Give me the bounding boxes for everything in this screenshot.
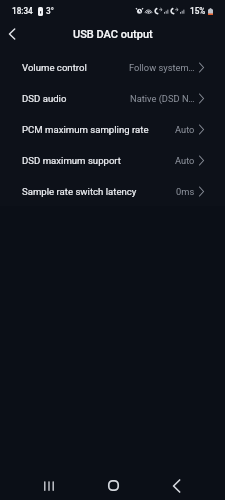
staticText: Sample rate switch latency <box>22 186 137 197</box>
staticText: Volume control <box>22 62 87 73</box>
staticText: 15% <box>190 6 206 16</box>
staticText: Auto <box>175 155 195 166</box>
staticText: Follow system… <box>129 62 195 73</box>
button[interactable]: DSD audio <box>0 83 225 114</box>
button[interactable]: Sample rate switch latency <box>0 176 225 207</box>
button[interactable]: Back <box>158 471 194 500</box>
staticText: Auto <box>175 124 195 135</box>
button[interactable]: Recent apps <box>31 471 67 500</box>
button[interactable]: Back <box>3 25 21 43</box>
staticText: 0ms <box>176 186 195 197</box>
staticText: DSD maximum support <box>22 155 121 166</box>
staticText: USB DAC output <box>73 28 153 41</box>
button[interactable]: PCM maximum sampling rate <box>0 114 225 145</box>
staticText: PCM maximum sampling rate <box>22 124 149 135</box>
staticText: Native (DSD N… <box>130 93 195 104</box>
staticText: DSD audio <box>22 93 67 104</box>
button[interactable]: DSD maximum support <box>0 145 225 176</box>
button[interactable]: Volume control <box>0 52 225 83</box>
staticText: 18:34 <box>12 6 33 16</box>
button[interactable]: Home <box>95 471 131 500</box>
staticText: 3° <box>46 6 54 16</box>
